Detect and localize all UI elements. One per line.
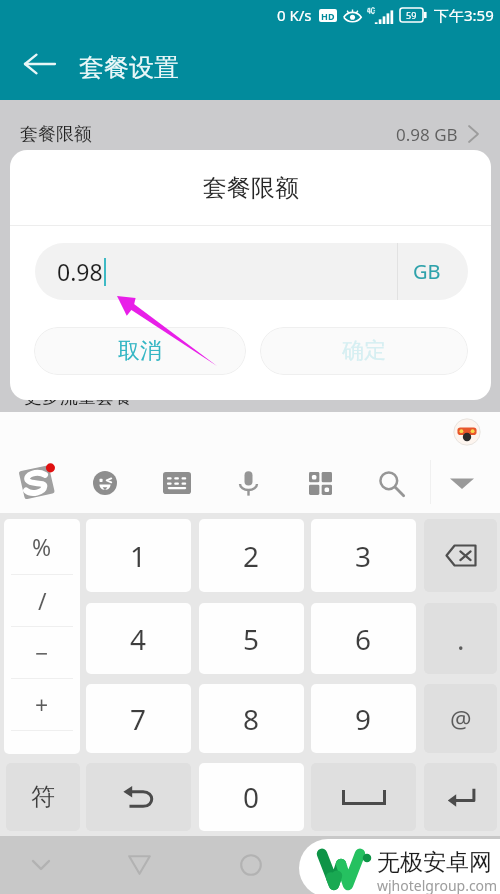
button[interactable]: At sign [424, 684, 497, 753]
button[interactable]: Back [109, 836, 169, 894]
staticText: 确定 [342, 337, 386, 365]
staticText: 3 [355, 537, 372, 575]
button[interactable]: + [4, 678, 80, 730]
staticText: HD [321, 10, 335, 22]
staticText: 1 [130, 537, 147, 575]
button[interactable]: / [4, 574, 80, 626]
staticText: 0.98 GB [396, 123, 458, 146]
button[interactable]: Hide keyboard [432, 455, 492, 511]
staticText: 9 [355, 700, 372, 738]
staticText: 6 [355, 620, 372, 658]
staticText: 无极安卓网 [377, 848, 492, 877]
button[interactable]: Back [8, 32, 72, 96]
staticText: + [35, 689, 49, 720]
button[interactable]: Dot [424, 603, 497, 674]
staticText: 59 [406, 9, 417, 21]
button[interactable]: 2 [199, 519, 304, 592]
button[interactable]: % [4, 519, 80, 574]
button[interactable]: − [4, 626, 80, 678]
staticText: 下午3:59 [434, 5, 494, 25]
staticText: . [457, 620, 465, 658]
button[interactable]: 3 [311, 519, 416, 592]
button[interactable]: 取消 [34, 327, 246, 375]
button[interactable]: Undo [86, 763, 191, 831]
staticText: @ [450, 702, 472, 735]
button[interactable]: 4 [86, 603, 191, 674]
button[interactable]: Keyboard layout [147, 455, 207, 511]
button[interactable]: Sogou input [6, 455, 66, 511]
button[interactable]: Voice input [218, 455, 278, 511]
staticText: 8 [243, 700, 260, 738]
staticText: / [38, 585, 47, 616]
button[interactable]: 8 [199, 684, 304, 753]
button[interactable]: 0 [199, 763, 304, 831]
staticText: 5 [243, 620, 260, 658]
staticText: 更多流量套餐 [24, 386, 132, 409]
button[interactable]: 5 [199, 603, 304, 674]
button[interactable]: 确定 [260, 327, 468, 375]
staticText: − [35, 637, 49, 668]
button[interactable]: Home [221, 836, 281, 894]
button[interactable]: 套餐限额 [0, 101, 500, 167]
staticText: 0.98 [57, 256, 103, 287]
staticText: 4 [130, 620, 147, 658]
button[interactable]: 7 [86, 684, 191, 753]
button[interactable]: 符 [6, 763, 80, 831]
staticText: 取消 [118, 337, 162, 365]
staticText: 0 [243, 778, 260, 816]
staticText: % [32, 531, 52, 562]
staticText: 套餐设置 [79, 52, 179, 83]
button[interactable]: Search [361, 455, 421, 511]
button[interactable]: 0.98 [35, 243, 468, 300]
button[interactable]: Avatar [453, 418, 481, 446]
staticText: 2 [243, 537, 260, 575]
staticText: 套餐限额 [20, 123, 92, 146]
staticText: 符 [31, 782, 55, 812]
button[interactable]: Enter [424, 763, 497, 831]
button[interactable]: 6 [311, 603, 416, 674]
staticText: 套餐限额 [203, 173, 299, 203]
button[interactable]: Space [311, 763, 416, 831]
button[interactable]: Emoji [75, 455, 135, 511]
staticText: 7 [130, 700, 147, 738]
button[interactable]: Delete [424, 519, 497, 592]
staticText: 0 K/s [277, 5, 312, 25]
button[interactable]: 1 [86, 519, 191, 592]
button[interactable]: 9 [311, 684, 416, 753]
staticText: wjhotelgroup.com [377, 876, 498, 894]
button[interactable]: Panels [290, 455, 350, 511]
staticText: GB [413, 258, 441, 285]
